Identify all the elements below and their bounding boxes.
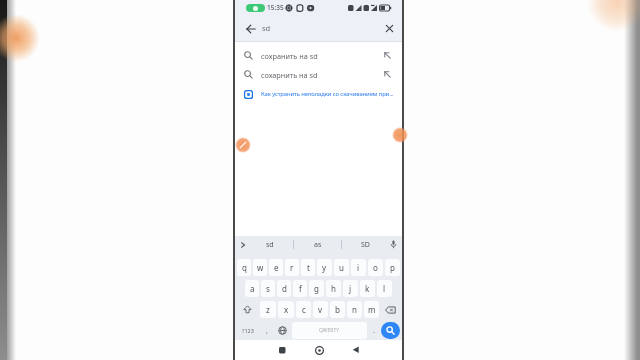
button[interactable]: Как устранить неполадки со скачиванием п… [235, 84, 402, 104]
button[interactable]: w [253, 259, 267, 276]
button[interactable]: j [343, 280, 358, 297]
button[interactable]: p [385, 259, 400, 276]
staticText: i [357, 262, 360, 273]
button[interactable]: o [368, 259, 383, 276]
button[interactable]: k [360, 280, 375, 297]
staticText: u [339, 262, 344, 273]
staticText: 15:35 [267, 3, 284, 12]
staticText: as [314, 240, 322, 250]
button[interactable]: x [278, 301, 294, 318]
button[interactable]: as [294, 236, 341, 253]
staticText: r [290, 262, 294, 273]
button[interactable] [385, 24, 394, 33]
staticText: a [250, 283, 255, 294]
button[interactable]: v [313, 301, 328, 318]
staticText: m [368, 304, 376, 315]
staticText: w [257, 262, 264, 273]
button[interactable]: сохранить на sd [235, 46, 402, 65]
button[interactable] [389, 240, 398, 249]
button[interactable]: u [334, 259, 349, 276]
button[interactable]: e [269, 259, 283, 276]
staticText: sd [262, 23, 271, 33]
button[interactable]: h [326, 280, 341, 297]
staticText: z [266, 304, 270, 315]
button[interactable]: t [301, 259, 315, 276]
button[interactable] [237, 301, 258, 318]
staticText: ?123 [242, 327, 254, 334]
staticText: e [274, 262, 279, 273]
staticText: сохранить на sd [261, 51, 383, 61]
staticText: , [266, 326, 268, 336]
button[interactable]: i [351, 259, 366, 276]
button[interactable] [381, 322, 400, 339]
button[interactable]: a [245, 280, 259, 297]
staticText: p [390, 262, 395, 273]
button[interactable] [275, 322, 290, 339]
staticText: QWERTY [319, 327, 340, 334]
staticText: g [314, 283, 319, 294]
button[interactable]: q [237, 259, 251, 276]
button[interactable]: g [309, 280, 324, 297]
button[interactable]: s [261, 280, 275, 297]
button[interactable]: z [260, 301, 276, 318]
button[interactable]: n [347, 301, 362, 318]
staticText: sd [266, 240, 274, 250]
staticText: c [302, 304, 306, 315]
button[interactable]: b [330, 301, 345, 318]
button[interactable]: ?123 [237, 322, 258, 339]
button[interactable]: r [285, 259, 299, 276]
staticText: j [349, 283, 352, 294]
button[interactable] [239, 241, 247, 249]
button[interactable]: d [277, 280, 291, 297]
button[interactable]: m [364, 301, 379, 318]
button[interactable] [275, 343, 289, 357]
staticText: Как устранить неполадки со скачиванием п… [261, 90, 394, 98]
button[interactable]: sd [235, 16, 402, 41]
button[interactable]: y [317, 259, 332, 276]
staticText: сохарнить на sd [261, 70, 383, 80]
staticText: k [365, 283, 370, 294]
staticText: SD [361, 240, 370, 250]
staticText: l [383, 283, 386, 294]
button[interactable]: QWERTY [292, 322, 367, 339]
button[interactable]: SD [342, 236, 389, 253]
staticText: h [331, 283, 336, 294]
staticText: q [242, 262, 247, 273]
staticText: . [373, 326, 375, 336]
staticText: y [322, 262, 327, 273]
staticText: s [266, 283, 270, 294]
staticText: t [307, 262, 310, 273]
button[interactable]: f [293, 280, 307, 297]
button[interactable]: l [377, 280, 392, 297]
button[interactable] [312, 343, 326, 357]
button[interactable]: c [296, 301, 311, 318]
staticText: x [284, 304, 289, 315]
button[interactable]: , [260, 322, 273, 339]
button[interactable] [381, 301, 400, 318]
staticText: n [352, 304, 357, 315]
button[interactable]: сохарнить на sd [235, 65, 402, 84]
staticText: b [335, 304, 340, 315]
staticText: o [373, 262, 378, 273]
button[interactable]: sd [247, 236, 293, 253]
button[interactable]: . [369, 322, 379, 339]
staticText: d [282, 283, 287, 294]
staticText: v [318, 304, 323, 315]
button[interactable] [349, 343, 363, 357]
staticText: f [299, 283, 302, 294]
